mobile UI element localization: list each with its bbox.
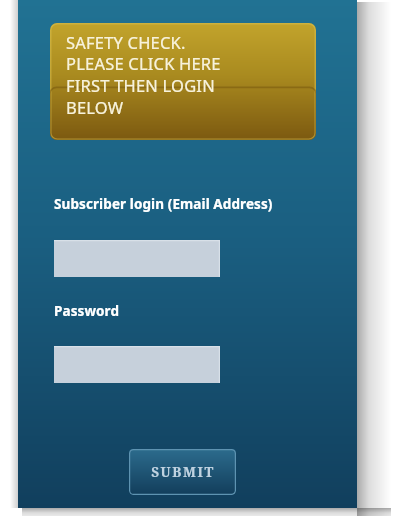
staticText: SUBMIT: [151, 463, 215, 481]
button[interactable]: SAFETY CHECK. PLEASE CLICK HERE FIRST TH…: [50, 23, 316, 140]
button[interactable]: SUBMIT: [129, 449, 236, 495]
button[interactable]: Text input field: [54, 240, 220, 277]
staticText: SAFETY CHECK. PLEASE CLICK HERE FIRST TH…: [66, 31, 221, 119]
button[interactable]: Text input field: [54, 346, 220, 383]
staticText: Password: [54, 302, 120, 320]
staticText: Subscriber login (Email Address): [54, 195, 273, 213]
